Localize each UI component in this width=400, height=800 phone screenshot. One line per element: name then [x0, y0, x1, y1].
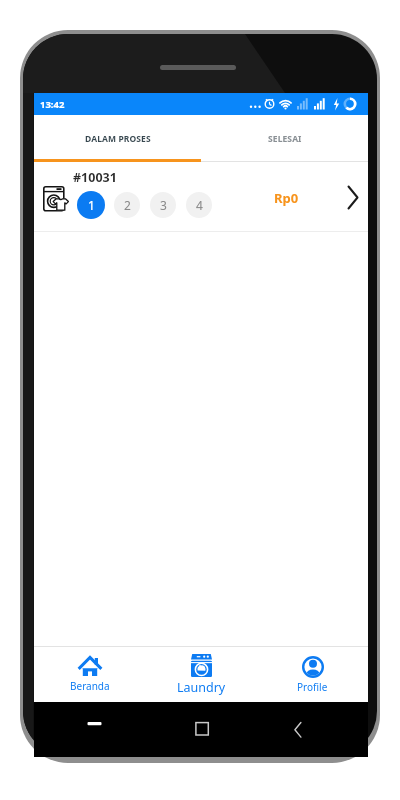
staticText: Laundry: [177, 679, 226, 696]
staticText: 2: [124, 197, 131, 213]
button[interactable]: Laundry: [146, 647, 257, 702]
button[interactable]: Profile: [257, 647, 368, 702]
staticText: Profile: [297, 680, 328, 694]
staticText: 3: [160, 197, 167, 213]
staticText: SELESAI: [268, 133, 302, 145]
staticText: 1: [88, 197, 95, 213]
staticText: Rp0: [274, 189, 299, 207]
button[interactable]: DALAM PROSES: [34, 115, 201, 162]
button[interactable]: Beranda: [34, 647, 146, 702]
staticText: #10031: [73, 169, 117, 186]
button[interactable]: #10031: [34, 162, 368, 232]
staticText: DALAM PROSES: [85, 133, 151, 145]
staticText: Beranda: [70, 679, 110, 693]
button[interactable]: SELESAI: [201, 115, 368, 162]
staticText: 4: [196, 197, 203, 213]
staticText: 13:42: [40, 98, 65, 111]
